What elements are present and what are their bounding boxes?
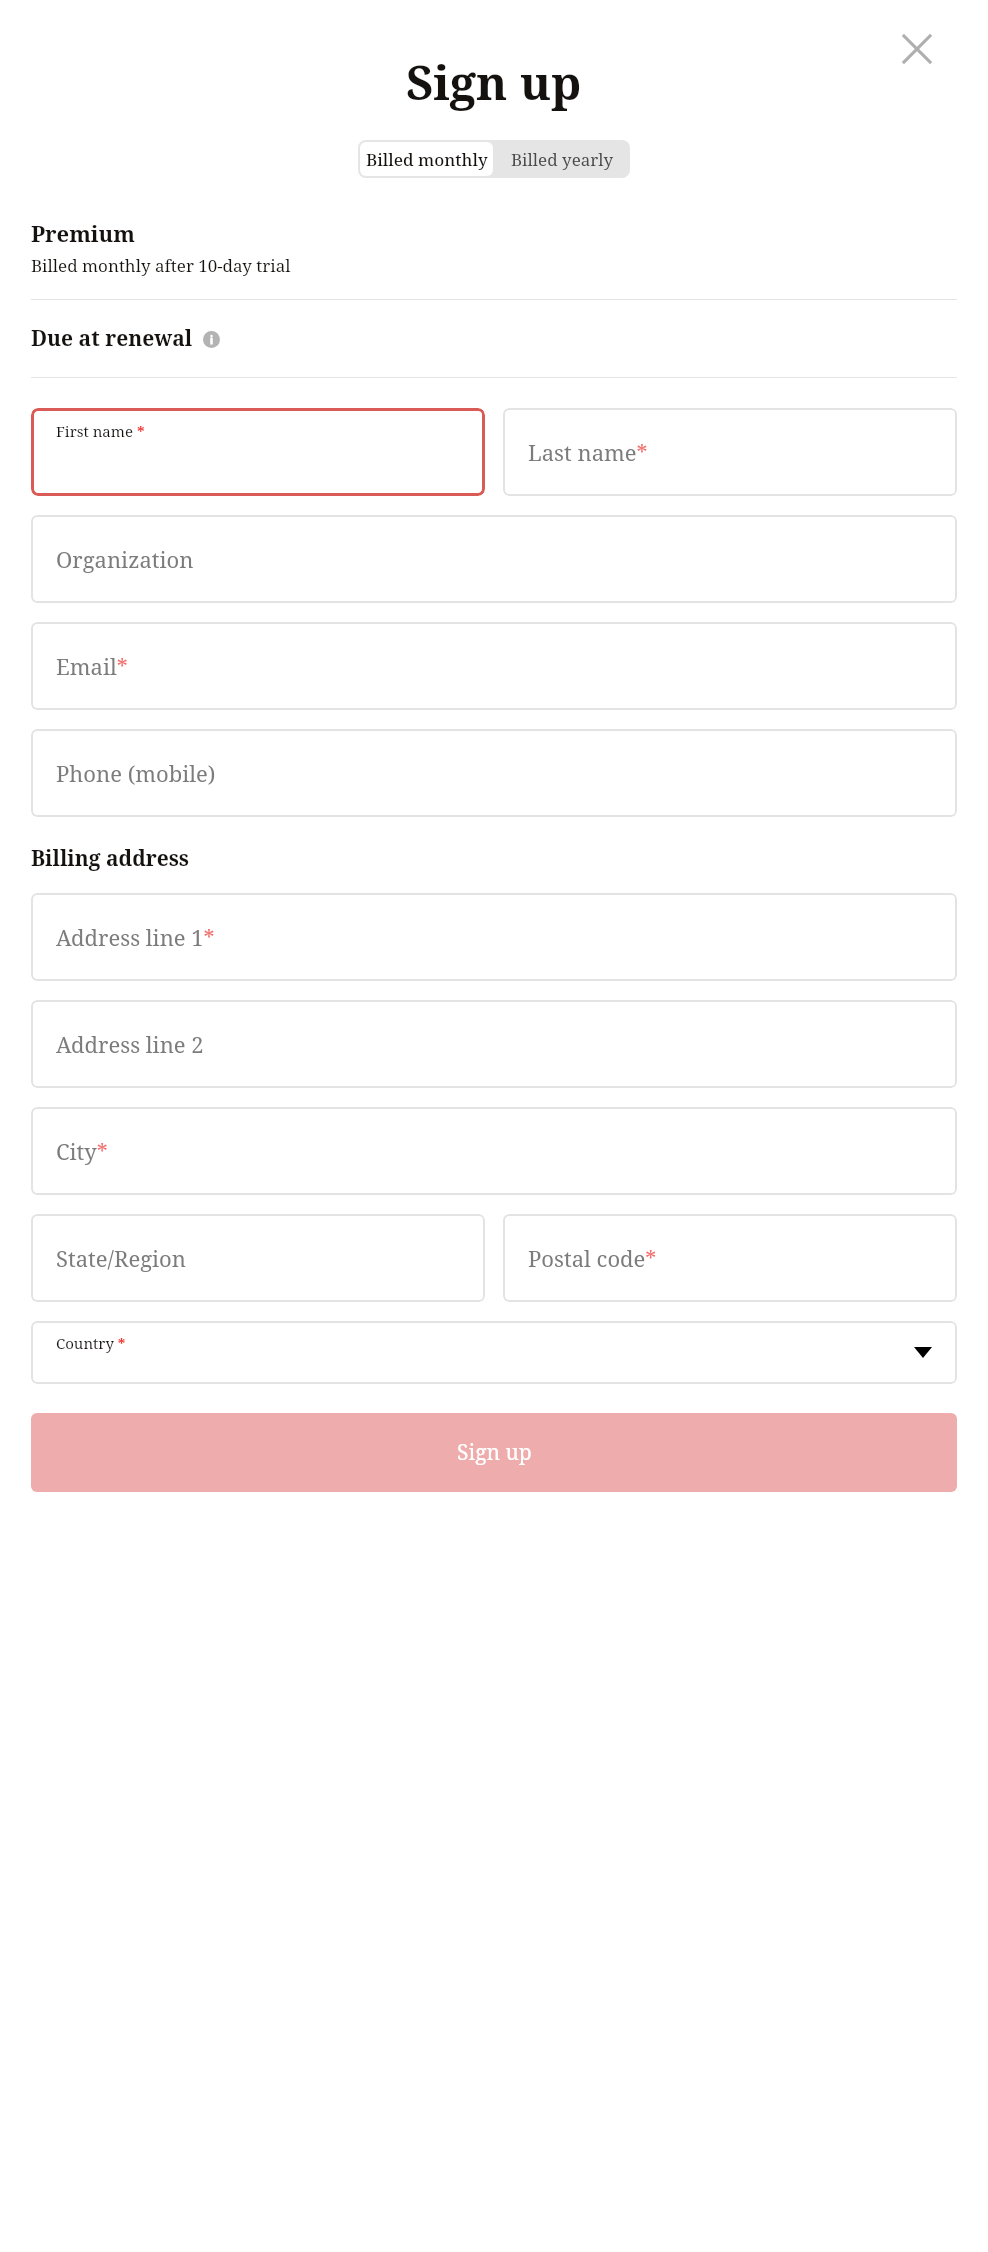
button[interactable]: First name * bbox=[31, 408, 485, 496]
button[interactable]: Billed monthly bbox=[360, 142, 493, 176]
button[interactable]: State/Region bbox=[31, 1214, 485, 1302]
button[interactable]: Postal code* bbox=[503, 1214, 957, 1302]
button[interactable]: Billed yearly bbox=[495, 140, 630, 178]
button[interactable]: Address line 1* bbox=[31, 893, 957, 981]
staticText: Billed monthly after 10-day trial bbox=[31, 254, 291, 277]
button[interactable]: Email* bbox=[31, 622, 957, 710]
button[interactable]: Last name* bbox=[503, 408, 957, 496]
button[interactable]: More information bbox=[202, 330, 220, 348]
staticText: Sign up bbox=[457, 1438, 532, 1467]
staticText: Billed yearly bbox=[511, 148, 614, 171]
staticText: Billing address bbox=[31, 844, 189, 873]
button[interactable]: Address line 2 bbox=[31, 1000, 957, 1088]
staticText: Address line 1* bbox=[56, 922, 215, 952]
staticText: First name * bbox=[56, 421, 145, 441]
staticText: Address line 2 bbox=[56, 1029, 204, 1059]
staticText: Due at renewal bbox=[31, 324, 193, 353]
staticText: Organization bbox=[56, 544, 194, 574]
staticText: Phone (mobile) bbox=[56, 758, 216, 788]
button[interactable]: Organization bbox=[31, 515, 957, 603]
staticText: Last name* bbox=[528, 437, 648, 467]
staticText: Postal code* bbox=[528, 1243, 657, 1273]
staticText: City* bbox=[56, 1136, 108, 1166]
button[interactable]: Close bbox=[892, 24, 942, 74]
staticText: Country * bbox=[56, 1333, 126, 1353]
button[interactable]: Sign up bbox=[31, 1413, 957, 1492]
button[interactable]: Country * bbox=[31, 1321, 957, 1384]
staticText: Email* bbox=[56, 651, 128, 681]
staticText: Sign up bbox=[406, 50, 582, 114]
button[interactable]: Phone (mobile) bbox=[31, 729, 957, 817]
staticText: State/Region bbox=[56, 1243, 186, 1273]
staticText: Billed monthly bbox=[366, 148, 488, 171]
staticText: Premium bbox=[31, 218, 135, 248]
button[interactable]: City* bbox=[31, 1107, 957, 1195]
